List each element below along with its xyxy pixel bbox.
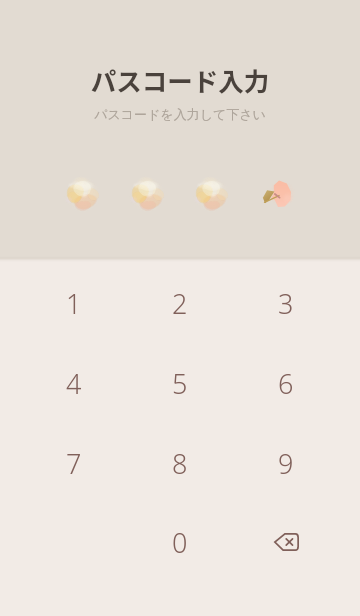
button[interactable]: 4 (24, 344, 124, 422)
staticText: 9 (278, 445, 294, 482)
button[interactable]: 0 (130, 503, 230, 581)
button[interactable]: 1 (24, 264, 124, 342)
button[interactable]: Backspace (236, 503, 336, 581)
staticText: 8 (172, 445, 188, 482)
staticText: 3 (278, 285, 294, 322)
button[interactable]: 2 (130, 264, 230, 342)
staticText: 7 (66, 445, 82, 482)
staticText: 4 (66, 365, 82, 402)
button[interactable]: 3 (236, 264, 336, 342)
button[interactable]: 9 (236, 424, 336, 502)
staticText: 5 (172, 365, 188, 402)
staticText: 1 (66, 285, 82, 322)
staticText: パスコードを入力して下さい (0, 106, 360, 122)
staticText: 0 (172, 524, 188, 561)
button[interactable]: 5 (130, 344, 230, 422)
button[interactable]: 8 (130, 424, 230, 502)
staticText: 6 (278, 365, 294, 402)
button[interactable]: 6 (236, 344, 336, 422)
staticText: 2 (172, 285, 188, 322)
button[interactable]: 7 (24, 424, 124, 502)
staticText: パスコード入力 (0, 61, 360, 98)
